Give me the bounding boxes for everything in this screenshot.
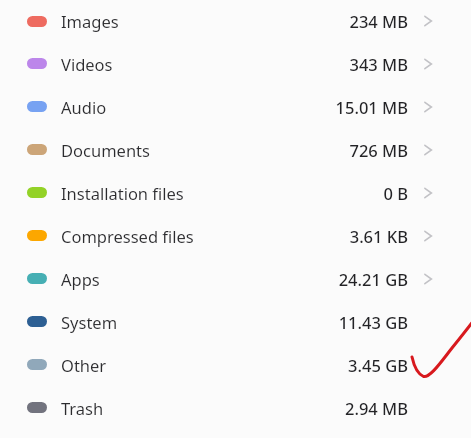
other: Open Audio (420, 98, 438, 116)
staticText: 3.61 KB (349, 225, 408, 247)
button[interactable]: Videos (0, 42, 471, 85)
button[interactable]: Apps (0, 257, 471, 300)
button[interactable]: Documents (0, 128, 471, 171)
staticText: Compressed files (61, 225, 194, 247)
other: Open Compressed files (420, 227, 438, 245)
button[interactable]: Installation files (0, 171, 471, 214)
staticText: 726 MB (349, 139, 408, 161)
staticText: 343 MB (349, 53, 408, 75)
staticText: 3.45 GB (348, 354, 408, 376)
staticText: 15.01 MB (335, 96, 408, 118)
staticText: 11.43 GB (338, 311, 408, 333)
other: Open Installation files (420, 184, 438, 202)
staticText: 234 MB (349, 10, 408, 32)
staticText: 24.21 GB (338, 268, 408, 290)
staticText: 2.94 MB (344, 397, 408, 419)
other: Open Documents (420, 141, 438, 159)
staticText: Apps (61, 268, 100, 290)
other: Open Videos (420, 55, 438, 73)
other: Open Apps (420, 270, 438, 288)
staticText: Installation files (61, 182, 184, 204)
button[interactable]: System (0, 300, 471, 343)
button[interactable]: Trash (0, 386, 471, 429)
other: Open Images (420, 12, 438, 30)
staticText: Documents (61, 139, 150, 161)
staticText: Images (61, 10, 119, 32)
staticText: Trash (61, 397, 104, 419)
staticText: Other (61, 354, 107, 376)
staticText: Videos (61, 53, 113, 75)
button[interactable]: Audio (0, 85, 471, 128)
button[interactable]: Compressed files (0, 214, 471, 257)
button[interactable]: Images (0, 0, 471, 42)
staticText: Audio (61, 96, 107, 118)
staticText: System (61, 311, 118, 333)
staticText: 0 B (383, 182, 408, 204)
button[interactable]: Other (0, 343, 471, 386)
